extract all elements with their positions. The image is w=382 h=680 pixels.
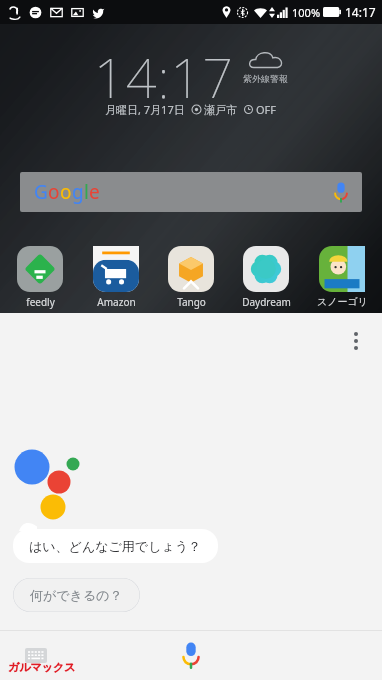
button[interactable]: G [20,172,362,212]
staticText: スノーゴリ [317,295,368,308]
staticText: 14:17 [345,4,376,20]
staticText: Daydream [242,295,291,309]
button[interactable]: Voice input [168,632,214,678]
staticText: ガルマックス [8,660,76,674]
button[interactable]: Amazon [81,246,151,309]
staticText: 14:17 [94,40,234,114]
button[interactable]: Daydream [231,246,301,309]
staticText: Tango [177,295,206,309]
button[interactable]: 何ができるの？ [13,578,140,612]
staticText: 100% [292,5,321,20]
staticText: o [48,179,60,205]
staticText: feedly [26,295,55,309]
staticText: 月曜日, 7月17日 [105,102,185,117]
staticText: e [89,179,100,205]
button[interactable]: 14:17 [0,36,382,146]
staticText: Amazon [97,295,136,309]
staticText: はい、どんなご用でしょう？ [29,538,202,554]
button[interactable]: Tango [156,246,226,309]
staticText: g [72,179,84,205]
staticText: 何ができるの？ [30,587,123,603]
staticText: l [84,179,89,205]
button[interactable]: feedly [5,246,75,309]
button[interactable]: はい、どんなご用でしょう？ [13,529,218,563]
staticText: o [60,179,72,205]
button[interactable]: スノーゴリ [307,246,377,308]
button[interactable]: More options [338,323,374,359]
staticText: 紫外線警報 [243,73,288,84]
staticText: OFF [256,102,277,117]
staticText: G [34,179,48,205]
button[interactable]: Keyboard [14,633,58,677]
staticText: 瀬戸市 [204,103,237,117]
